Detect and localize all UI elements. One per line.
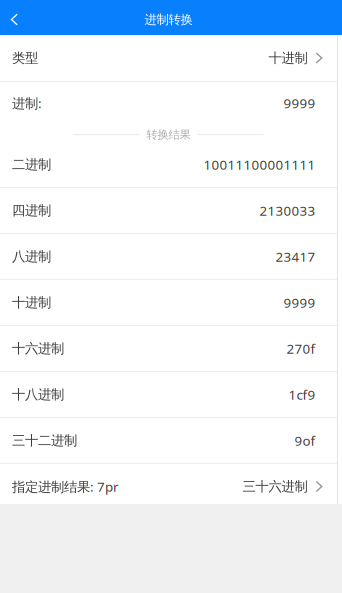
staticText: 十六进制: [12, 340, 64, 357]
staticText: 十进制: [268, 50, 307, 66]
staticText: 类型: [12, 50, 38, 66]
staticText: 二进制: [12, 156, 51, 173]
button[interactable]: 指定进制结果: 7pr: [0, 464, 342, 509]
staticText: 八进制: [12, 248, 51, 265]
staticText: 270f: [286, 339, 315, 358]
button[interactable]: Back: [0, 0, 32, 35]
staticText: 9999: [283, 293, 315, 312]
staticText: 1cf9: [288, 385, 315, 404]
staticText: 三十二进制: [12, 432, 77, 449]
staticText: 指定进制结果: 7pr: [12, 477, 119, 496]
staticText: 转换结果: [146, 127, 190, 142]
staticText: 十进制: [12, 294, 51, 311]
button[interactable]: 类型: [0, 35, 342, 81]
staticText: 进制:: [12, 94, 42, 112]
staticText: 2130033: [259, 201, 315, 220]
staticText: 进制转换: [144, 12, 192, 27]
staticText: 三十六进制: [242, 478, 307, 495]
staticText: 四进制: [12, 202, 51, 219]
staticText: 10011100001111: [203, 155, 315, 174]
staticText: 十八进制: [12, 386, 64, 403]
staticText: 9999: [283, 94, 315, 112]
staticText: 9of: [294, 431, 315, 450]
staticText: 23417: [275, 247, 315, 266]
